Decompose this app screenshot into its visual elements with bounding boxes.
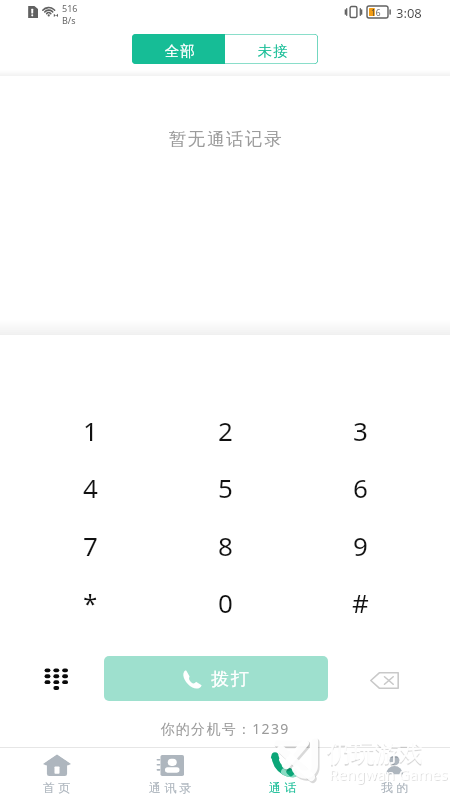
staticText: Rengwan Games [329,764,448,784]
button[interactable]: 全部 [132,34,225,64]
staticText: 你的分机号：1239 [0,719,450,738]
staticText: 通讯录 [149,780,195,795]
button[interactable]: 通讯录 [113,748,226,800]
staticText: 6 [353,470,368,505]
staticText: 9 [353,528,368,563]
staticText: 首页 [43,780,74,795]
staticText: 暂无通话记录 [1,128,450,150]
button[interactable]: 3 [315,402,405,459]
button[interactable]: 6 [315,459,405,516]
button[interactable]: # [315,574,405,631]
button[interactable]: 2 [180,402,270,459]
staticText: 仍玩游戏 [327,738,423,768]
staticText: 2 [218,413,233,448]
button[interactable]: 8 [180,517,270,574]
staticText: 拨打 [211,668,251,691]
button[interactable]: 7 [45,517,135,574]
staticText: 3:08 [396,4,422,22]
staticText: 3 [353,413,368,448]
button[interactable]: Keypad [38,660,74,696]
button[interactable]: 9 [315,517,405,574]
staticText: 5 [218,470,233,505]
staticText: 未接 [257,42,288,60]
button[interactable]: 拨打 [104,656,328,701]
staticText: B/s [62,14,76,26]
staticText: 仍玩游戏 [327,740,423,770]
button[interactable]: 未接 [225,34,318,64]
staticText: 0 [218,585,233,620]
button[interactable]: 0 [180,574,270,631]
staticText: 16 [371,7,381,19]
staticText: 516 [62,2,78,14]
staticText: 1 [83,413,98,448]
button[interactable]: Backspace [366,661,402,697]
button[interactable]: 5 [180,459,270,516]
button[interactable]: 首页 [0,748,113,800]
staticText: 我的 [381,780,412,795]
button[interactable]: 我的 [339,748,450,800]
button[interactable]: 4 [45,459,135,516]
staticText: 7 [83,528,98,563]
staticText: 全部 [164,42,195,60]
staticText: 4 [83,470,98,505]
button[interactable]: 通话 [226,748,339,800]
staticText: # [352,585,369,620]
staticText: 通话 [269,780,300,795]
button[interactable]: * [45,574,135,631]
staticText: * [83,585,98,620]
staticText: Rengwan Games [330,765,449,785]
staticText: 8 [218,528,233,563]
button[interactable]: 1 [45,402,135,459]
